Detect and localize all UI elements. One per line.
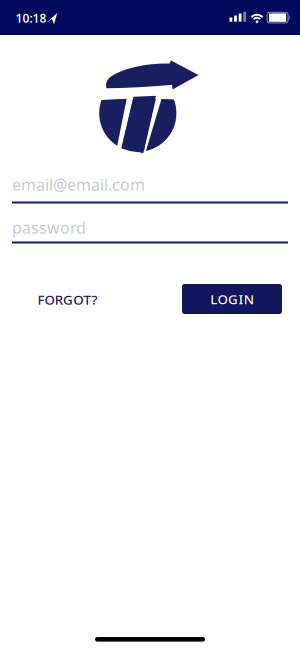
staticText: email@email.com [12,174,145,195]
staticText: FORGOT? [37,291,98,308]
staticText: LOGIN [210,290,254,308]
button[interactable]: password [12,217,288,243]
staticText: 10:18 [15,10,46,26]
button[interactable]: FORGOT? [37,291,98,308]
staticText: password [12,217,86,238]
button[interactable]: email@email.com [12,174,288,203]
button[interactable]: LOGIN [182,284,282,314]
